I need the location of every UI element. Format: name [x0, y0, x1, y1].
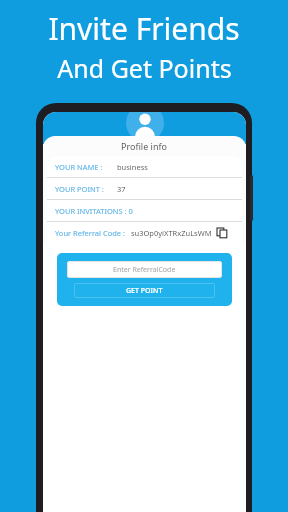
staticText: YOUR INVITATIONS : 0: [55, 206, 133, 216]
button[interactable]: GET POINT: [74, 283, 215, 298]
staticText: YOUR POINT :: [55, 184, 104, 194]
button[interactable]: Enter ReferralCode: [67, 261, 222, 278]
staticText: Your Referral Code :: [55, 228, 126, 238]
staticText: YOUR NAME :: [55, 162, 103, 172]
staticText: And Get Points: [57, 51, 232, 85]
staticText: business: [117, 162, 148, 172]
staticText: GET POINT: [126, 286, 163, 296]
staticText: Profile info: [121, 140, 168, 152]
staticText: su3Op0yiXTRxZuLsWM: [131, 228, 212, 238]
staticText: Enter ReferralCode: [113, 265, 176, 275]
button[interactable]: YOUR INVITATIONS : 0: [47, 200, 242, 221]
button[interactable]: YOUR POINT :: [47, 178, 242, 199]
button[interactable]: Copy referral code: [215, 226, 228, 239]
button[interactable]: Your Referral Code :: [47, 222, 242, 243]
button[interactable]: YOUR NAME :: [47, 156, 242, 177]
staticText: Invite Friends: [48, 8, 240, 49]
staticText: 37: [117, 184, 126, 194]
